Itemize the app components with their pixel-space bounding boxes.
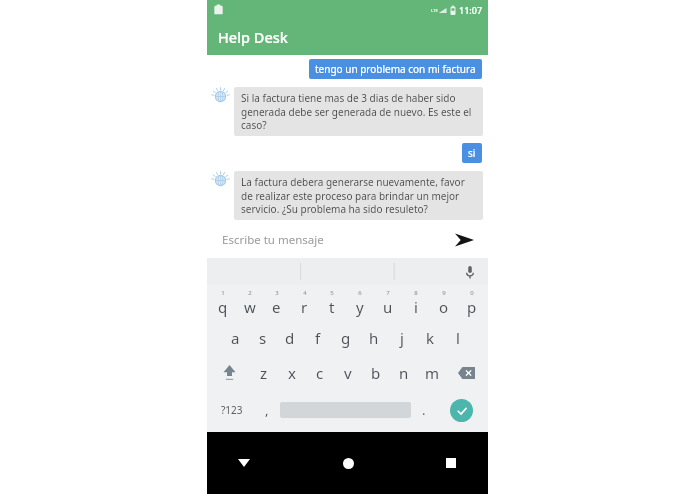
staticText: k [426,328,435,348]
staticText: Si la factura tiene mas de 3 dias de hab… [241,91,476,132]
button[interactable]: tengo un problema con mi factura [309,59,482,79]
button[interactable]: v [334,355,362,390]
staticText: t [329,297,335,317]
button[interactable]: j [388,321,416,355]
button[interactable]: l [444,321,472,355]
staticText: o [439,297,449,317]
staticText: z [260,363,268,383]
staticText: d [285,328,295,348]
staticText: r [301,297,308,317]
staticText: tengo un problema con mi factura [315,62,476,76]
staticText: g [341,328,351,348]
button[interactable]: Recents [438,450,464,476]
staticText: 3 [275,289,279,297]
button[interactable]: 3 [263,285,290,321]
button[interactable]: d [276,321,304,355]
staticText: q [218,297,228,317]
staticText: . [422,401,426,419]
button[interactable]: 2 [236,285,263,321]
button[interactable]: m [418,355,446,390]
staticText: 4 [303,289,307,297]
button[interactable]: Enter [437,390,486,430]
staticText: 8 [414,289,418,297]
staticText: 1 [221,289,225,297]
button[interactable]: si [462,143,482,163]
staticText: 5 [330,289,334,297]
staticText: v [344,363,352,383]
staticText: 0 [470,289,474,297]
staticText: p [467,297,477,317]
staticText: c [316,363,324,383]
staticText: h [369,328,379,348]
staticText: w [244,297,256,317]
button[interactable]: x [278,355,306,390]
staticText: s [259,328,267,348]
button[interactable]: g [332,321,360,355]
button[interactable]: 4 [290,285,318,321]
button[interactable]: Shift [209,355,250,390]
staticText: j [400,328,404,348]
button[interactable]: b [362,355,390,390]
staticText: 2 [248,289,252,297]
staticText: a [231,328,240,348]
staticText: b [371,363,381,383]
staticText: Help Desk [218,27,288,47]
button[interactable]: a [222,321,249,355]
button[interactable]: f [304,321,332,355]
staticText: , [265,401,269,419]
staticText: e [272,297,281,317]
staticText: n [399,363,409,383]
button[interactable]: 8 [402,285,430,321]
button[interactable]: z [250,355,278,390]
button[interactable]: c [306,355,334,390]
button[interactable]: Voice input [461,263,479,281]
staticText: 9 [442,289,446,297]
staticText: LTE [431,8,438,13]
staticText: Escribe tu mensaje [222,232,324,248]
button[interactable]: 1 [209,285,236,321]
staticText: l [456,328,460,348]
button[interactable]: . [411,390,437,430]
button[interactable]: Home [335,450,361,476]
staticText: m [425,363,440,383]
button[interactable]: n [390,355,418,390]
button[interactable]: La factura debera generarse nuevamente, … [234,171,483,220]
staticText: x [288,363,296,383]
staticText: u [383,297,393,317]
button[interactable]: 9 [430,285,458,321]
staticText: 7 [386,289,390,297]
staticText: 11:07 [459,4,483,16]
staticText: f [315,328,321,348]
button[interactable]: 0 [458,285,486,321]
button[interactable]: , [254,390,280,430]
staticText: si [468,146,476,160]
button[interactable]: Back [231,450,257,476]
button[interactable]: 5 [318,285,346,321]
button[interactable]: k [416,321,444,355]
button[interactable]: 7 [374,285,402,321]
button[interactable]: s [249,321,276,355]
staticText: ?123 [221,403,243,417]
button[interactable]: ?123 [209,390,254,430]
staticText: y [356,297,364,317]
button[interactable]: Backspace [446,355,486,390]
button[interactable]: Si la factura tiene mas de 3 dias de hab… [234,87,483,136]
button[interactable]: 6 [346,285,374,321]
button[interactable]: h [360,321,388,355]
button[interactable]: Send [451,227,477,253]
staticText: La factura debera generarse nuevamente, … [241,175,476,216]
staticText: 6 [358,289,362,297]
staticText: i [414,297,418,317]
